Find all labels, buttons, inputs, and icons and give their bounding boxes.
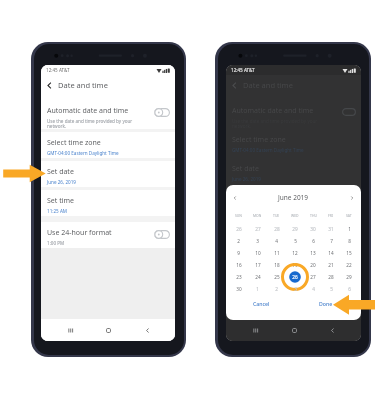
button[interactable]: Cancel <box>248 297 275 310</box>
staticText: 17 <box>255 262 261 268</box>
button[interactable]: 6 <box>340 283 358 295</box>
staticText: 20 <box>310 262 316 268</box>
button[interactable]: 8 <box>340 235 358 247</box>
staticText: 27 <box>310 274 316 280</box>
button[interactable]: Automatic date and time <box>41 95 175 129</box>
staticText: 9 <box>237 250 240 256</box>
staticText: Use the date and time provided by your n… <box>47 118 133 129</box>
button[interactable]: 4 <box>304 283 322 295</box>
button[interactable]: Back <box>137 320 157 340</box>
button[interactable]: Set date <box>226 158 361 187</box>
button[interactable]: 1 <box>340 223 358 235</box>
button[interactable]: 26 <box>286 271 304 283</box>
button[interactable]: 2 <box>229 235 248 247</box>
button[interactable]: Select time zone <box>226 129 361 158</box>
button[interactable]: 25 <box>267 271 286 283</box>
button[interactable]: Recents <box>245 320 265 340</box>
button[interactable]: 1 <box>248 283 267 295</box>
staticText: Set time <box>47 196 74 206</box>
button[interactable]: 11 <box>267 247 286 259</box>
button[interactable]: 18 <box>267 259 286 271</box>
staticText: Done <box>319 300 333 307</box>
button[interactable]: Home <box>98 320 118 340</box>
button[interactable]: 14 <box>322 247 340 259</box>
staticText: 13 <box>310 250 316 256</box>
staticText: 5 <box>294 238 297 244</box>
staticText: 19 <box>292 262 298 268</box>
button[interactable]: 27 <box>248 223 267 235</box>
button[interactable]: Back <box>41 77 58 94</box>
button[interactable]: 13 <box>304 247 322 259</box>
button[interactable]: Back <box>41 75 175 95</box>
staticText: GMT-04:00 Eastern Daylight Time <box>47 150 119 156</box>
button[interactable]: Select time zone <box>41 132 175 158</box>
button[interactable]: Back <box>322 320 342 340</box>
staticText: 30 <box>236 286 242 292</box>
button[interactable]: Use 24-hour format <box>41 222 175 248</box>
staticText: GMT-04:00 Eastern Daylight Time <box>232 147 304 153</box>
button[interactable]: 28 <box>267 223 286 235</box>
button[interactable]: 24 <box>248 271 267 283</box>
button[interactable]: 15 <box>340 247 358 259</box>
button[interactable]: 3 <box>286 283 304 295</box>
staticText: 1:00 PM <box>47 240 65 246</box>
staticText: WED <box>291 213 299 218</box>
button[interactable]: 31 <box>322 223 340 235</box>
button[interactable]: 26 <box>229 223 248 235</box>
button[interactable]: 21 <box>322 259 340 271</box>
staticText: MON <box>253 213 262 218</box>
button[interactable]: Recents <box>60 320 80 340</box>
button[interactable]: 23 <box>229 271 248 283</box>
button[interactable]: 19 <box>286 259 304 271</box>
staticText: Cancel <box>253 300 270 307</box>
staticText: 23 <box>236 274 242 280</box>
staticText: 29 <box>292 226 298 232</box>
staticText: Automatic date and time <box>47 106 129 116</box>
staticText: 14 <box>328 250 334 256</box>
button[interactable]: 12 <box>286 247 304 259</box>
button[interactable]: 3 <box>248 235 267 247</box>
staticText: June 2019 <box>278 193 309 202</box>
button[interactable]: 2 <box>267 283 286 295</box>
staticText: Select time zone <box>232 135 286 145</box>
button[interactable]: 28 <box>322 271 340 283</box>
staticText: TUE <box>273 213 280 218</box>
button[interactable]: 20 <box>304 259 322 271</box>
button[interactable]: 29 <box>340 271 358 283</box>
button[interactable]: 17 <box>248 259 267 271</box>
button[interactable]: Home <box>284 320 304 340</box>
staticText: 12 <box>292 250 298 256</box>
button[interactable]: 5 <box>286 235 304 247</box>
button[interactable]: 29 <box>286 223 304 235</box>
staticText: FRI <box>328 213 334 218</box>
button[interactable]: 5 <box>322 283 340 295</box>
button[interactable]: 30 <box>229 283 248 295</box>
button[interactable]: Set time <box>41 190 175 216</box>
staticText: THU <box>310 213 317 218</box>
button[interactable]: 30 <box>304 223 322 235</box>
button[interactable]: Done <box>314 297 338 310</box>
staticText: 29 <box>346 274 352 280</box>
button[interactable]: 16 <box>229 259 248 271</box>
staticText: 15 <box>346 250 352 256</box>
staticText: Set date <box>47 167 74 177</box>
staticText: 10 <box>255 250 261 256</box>
button[interactable]: Next month <box>346 192 358 204</box>
staticText: Date and time <box>58 80 108 90</box>
button[interactable]: Previous month <box>229 192 241 204</box>
button[interactable]: 10 <box>248 247 267 259</box>
button[interactable]: 22 <box>340 259 358 271</box>
staticText: 4 <box>312 286 315 292</box>
button[interactable]: 27 <box>304 271 322 283</box>
button[interactable]: 4 <box>267 235 286 247</box>
button[interactable]: Set date <box>41 161 175 187</box>
button[interactable]: 7 <box>322 235 340 247</box>
button[interactable]: 9 <box>229 247 248 259</box>
staticText: 12:45 AT&T <box>46 67 70 73</box>
button[interactable]: 6 <box>304 235 322 247</box>
staticText: June 26, 2019 <box>47 179 76 185</box>
staticText: 2 <box>275 286 278 292</box>
button[interactable]: Back <box>226 77 243 94</box>
